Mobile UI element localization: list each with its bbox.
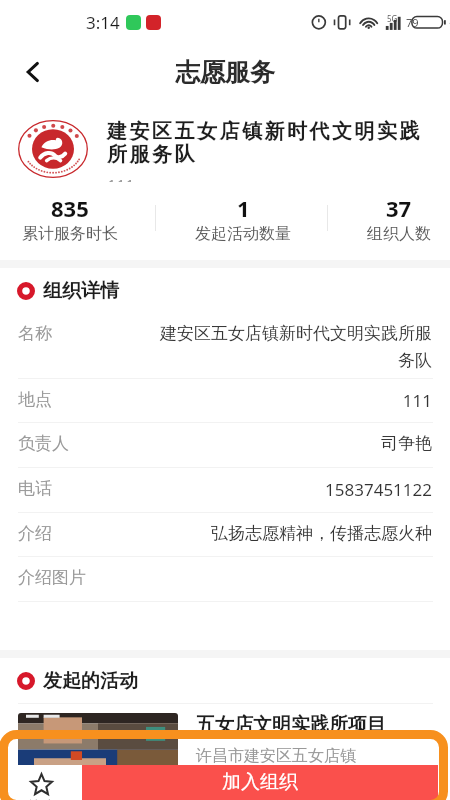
staticText: 37 [386, 193, 412, 223]
staticText: 建安区五女店镇新时代文明实践所服务队 [107, 119, 429, 167]
staticText: 发起的活动 [43, 669, 138, 693]
staticText: 名称 [18, 323, 52, 344]
button[interactable]: 负责人 [0, 423, 450, 468]
button[interactable]: 关注 [0, 765, 82, 800]
button[interactable]: 介绍 [0, 513, 450, 557]
staticText: 弘扬志愿精神，传播志愿火种 [155, 523, 432, 544]
button[interactable]: 加入组织 [82, 765, 438, 800]
staticText: 发起活动数量 [195, 224, 291, 244]
staticText: 1 [237, 193, 250, 223]
staticText: 关注 [26, 798, 56, 800]
staticText: 电话 [18, 478, 52, 499]
staticText: 司争艳 [155, 433, 432, 454]
staticText: 五女店文明实践所项目 [196, 713, 386, 737]
staticText: 累计服务时长 [22, 224, 118, 244]
staticText: 15837451122 [155, 478, 432, 501]
staticText: 5G [387, 13, 398, 24]
staticText: 111 [155, 389, 432, 412]
staticText: 许昌市建安区五女店镇 [196, 746, 356, 766]
button[interactable]: 名称 [0, 313, 450, 379]
button[interactable]: 五女店文明实践所项目 [18, 713, 433, 800]
staticText: 组织详情 [43, 279, 119, 303]
button[interactable]: 地点 [0, 379, 450, 423]
button[interactable]: 介绍图片 [0, 557, 450, 602]
staticText: 志愿服务 [175, 57, 275, 88]
staticText: 加入组织 [222, 770, 298, 794]
staticText: 835 [51, 193, 89, 223]
staticText: 介绍 [18, 523, 52, 544]
staticText: 组织人数 [367, 224, 431, 244]
staticText: 79 [406, 15, 419, 30]
staticText: 3:14 [86, 11, 120, 34]
staticText: 111 [107, 175, 135, 182]
staticText: 负责人 [18, 433, 69, 454]
staticText: 建安区五女店镇新时代文明实践所服务队 [155, 323, 432, 371]
button[interactable]: Back [9, 48, 57, 96]
button[interactable]: 电话 [0, 468, 450, 513]
staticText: 地点 [18, 389, 52, 410]
staticText: 介绍图片 [18, 567, 86, 588]
